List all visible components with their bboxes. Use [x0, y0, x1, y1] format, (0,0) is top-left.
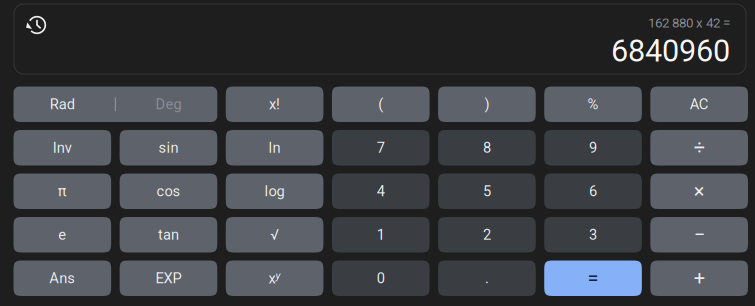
staticText: 5 [483, 183, 491, 200]
staticText: e [58, 226, 66, 243]
button[interactable]: × [650, 173, 748, 209]
button[interactable]: = [544, 260, 642, 296]
button[interactable]: tan [120, 217, 217, 252]
staticText: ) [484, 96, 489, 113]
button[interactable]: π [13, 173, 111, 209]
button[interactable]: ln [226, 130, 323, 165]
staticText: . [485, 270, 489, 287]
button[interactable]: 9 [544, 130, 642, 165]
staticText: EXP [155, 270, 181, 287]
button[interactable]: ) [438, 86, 536, 122]
staticText: Inv [53, 139, 72, 156]
staticText: 6840960 [611, 33, 730, 69]
staticText: Deg [155, 96, 181, 113]
button[interactable]: AC [650, 86, 748, 122]
button[interactable]: History [22, 10, 52, 40]
staticText: xy [269, 270, 281, 287]
staticText: AC [690, 96, 709, 113]
button[interactable]: 5 [438, 173, 536, 209]
staticText: 6 [589, 183, 597, 200]
button[interactable]: x! [226, 86, 323, 122]
staticText: % [587, 96, 598, 113]
button[interactable]: √ [226, 217, 323, 252]
button[interactable]: 8 [438, 130, 536, 165]
staticText: π [58, 183, 67, 200]
button[interactable]: 2 [438, 217, 536, 252]
staticText: = [587, 266, 598, 290]
button[interactable]: sin [120, 130, 217, 165]
staticText: 1 [377, 226, 385, 243]
staticText: Rad [50, 96, 75, 113]
staticText: 0 [377, 270, 385, 287]
staticText: − [694, 223, 705, 246]
button[interactable]: ÷ [650, 130, 748, 165]
staticText: sin [158, 139, 178, 156]
button[interactable]: 4 [332, 173, 429, 209]
staticText: 4 [377, 183, 385, 200]
button[interactable]: + [650, 260, 748, 296]
button[interactable]: 7 [332, 130, 429, 165]
staticText: log [265, 183, 285, 200]
button[interactable]: − [650, 217, 748, 252]
staticText: 8 [483, 139, 491, 156]
button[interactable]: cos [120, 173, 217, 209]
button[interactable]: xy [226, 260, 323, 296]
staticText: cos [156, 183, 180, 200]
staticText: √ [270, 226, 279, 243]
button[interactable]: . [438, 260, 536, 296]
staticText: 2 [483, 226, 491, 243]
staticText: + [694, 266, 705, 290]
staticText: Ans [49, 270, 75, 287]
button[interactable]: Inv [13, 130, 111, 165]
staticText: tan [158, 226, 179, 243]
staticText: x! [269, 96, 280, 113]
button[interactable]: Rad [13, 86, 217, 122]
staticText: 7 [377, 139, 385, 156]
button[interactable]: e [13, 217, 111, 252]
button[interactable]: % [544, 86, 642, 122]
button[interactable]: 1 [332, 217, 429, 252]
button[interactable]: EXP [120, 260, 217, 296]
button[interactable]: 0 [332, 260, 429, 296]
staticText: ( [378, 96, 383, 113]
staticText: 3 [589, 226, 597, 243]
staticText: ln [269, 139, 281, 156]
button[interactable]: Ans [13, 260, 111, 296]
button[interactable]: 6 [544, 173, 642, 209]
staticText: × [694, 179, 705, 203]
staticText: 162 880 x 42 = [648, 15, 730, 31]
button[interactable]: 3 [544, 217, 642, 252]
staticText: 9 [589, 139, 597, 156]
button[interactable]: log [226, 173, 323, 209]
staticText: ÷ [694, 136, 705, 159]
button[interactable]: ( [332, 86, 429, 122]
